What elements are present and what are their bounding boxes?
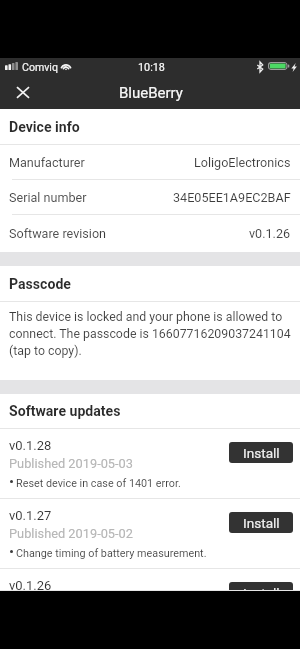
- staticText: Published 2019-05-02: [9, 526, 133, 541]
- staticText: Software updates: [9, 403, 121, 420]
- staticText: v0.1.27: [9, 508, 52, 523]
- staticText: Device info: [9, 119, 80, 136]
- button[interactable]: Software revision: [0, 215, 300, 252]
- staticText: Passcode: [9, 276, 71, 293]
- staticText: Change timing of battery measurement.: [16, 547, 207, 560]
- button[interactable]: Manufacturer: [0, 145, 300, 180]
- button[interactable]: Install: [229, 582, 293, 591]
- button[interactable]: Serial number: [0, 180, 300, 215]
- staticText: Software revision: [9, 226, 107, 241]
- staticText: Install: [243, 515, 280, 531]
- staticText: Reset device in case of 1401 error.: [16, 477, 181, 490]
- staticText: v0.1.26: [249, 226, 291, 241]
- staticText: This device is locked and your phone is …: [9, 310, 294, 358]
- button[interactable]: Close: [0, 76, 45, 109]
- button[interactable]: Install: [229, 442, 293, 463]
- staticText: Comviq: [22, 61, 58, 73]
- button[interactable]: This device is locked and your phone is …: [0, 302, 300, 380]
- staticText: Published 2019-05-03: [9, 456, 133, 471]
- staticText: 34E05EE1A9EC2BAF: [173, 190, 291, 205]
- staticText: Install: [243, 585, 280, 591]
- staticText: 10:18: [138, 61, 165, 74]
- staticText: Manufacturer: [9, 155, 85, 170]
- staticText: LoligoElectronics: [194, 155, 291, 170]
- staticText: v0.1.26: [9, 578, 52, 591]
- staticText: Serial number: [9, 190, 87, 205]
- staticText: BlueBerry: [119, 84, 183, 102]
- staticText: Install: [243, 445, 280, 461]
- staticText: v0.1.28: [9, 438, 52, 453]
- button[interactable]: Install: [229, 512, 293, 533]
